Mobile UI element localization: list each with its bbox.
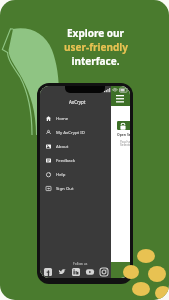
button[interactable]: Home (40, 111, 111, 125)
button[interactable]: Feedback (40, 153, 111, 167)
staticText: About (56, 143, 69, 149)
staticText: user-friendly (64, 40, 128, 54)
staticText: Feedback (56, 157, 76, 163)
button[interactable]: Twitter (58, 268, 66, 276)
button[interactable]: Open Secure Folder (117, 121, 130, 130)
staticText: interface. (71, 54, 120, 68)
staticText: Help (56, 171, 66, 177)
button[interactable]: My AxCrypt ID (40, 125, 111, 139)
staticText: Explore our (67, 26, 124, 40)
staticText: AxCrypt (69, 99, 86, 105)
staticText: You have Selected (120, 139, 130, 147)
button[interactable]: YouTube (86, 268, 94, 276)
staticText: Sign Out (56, 185, 74, 191)
staticText: My AxCrypt ID (56, 129, 85, 135)
staticText: Home (56, 115, 69, 121)
button[interactable]: Sign Out (40, 181, 111, 195)
staticText: Open Secure (117, 132, 130, 137)
button[interactable]: Help (40, 167, 111, 181)
button[interactable]: About (40, 139, 111, 153)
button[interactable]: Facebook (44, 268, 52, 276)
button[interactable]: Open navigation menu (116, 95, 124, 103)
staticText: Follow us (73, 261, 88, 265)
button[interactable]: Instagram (100, 268, 108, 276)
button[interactable]: LinkedIn (72, 268, 80, 276)
